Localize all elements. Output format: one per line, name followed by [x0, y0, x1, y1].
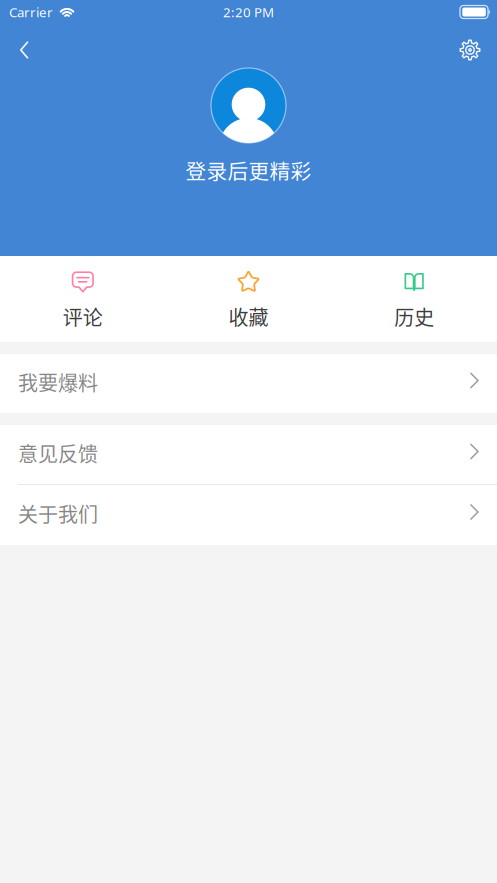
button[interactable]: 收藏 — [166, 256, 331, 342]
staticText: 历史 — [394, 302, 434, 331]
button[interactable]: 评论 — [0, 256, 166, 342]
button[interactable]: 我要爆料 — [0, 354, 497, 413]
staticText: 关于我们 — [18, 499, 98, 528]
staticText: Carrier — [9, 3, 53, 21]
staticText: 收藏 — [228, 302, 268, 331]
button[interactable]: 关于我们 — [0, 485, 497, 545]
button[interactable]: 意见反馈 — [0, 425, 497, 484]
staticText: 我要爆料 — [18, 367, 98, 396]
button[interactable]: Settings — [448, 22, 492, 78]
staticText: 2:20 PM — [223, 3, 274, 21]
button[interactable]: Back — [2, 22, 46, 78]
staticText: 意见反馈 — [18, 438, 98, 467]
staticText: 登录后更精彩 — [185, 155, 311, 185]
button[interactable]: 历史 — [331, 256, 497, 342]
staticText: 评论 — [63, 302, 103, 331]
